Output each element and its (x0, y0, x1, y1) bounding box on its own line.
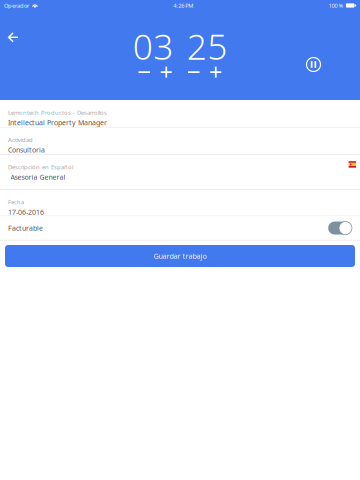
staticText: Fecha (8, 198, 24, 206)
staticText: 5 (207, 22, 227, 70)
button[interactable]: Increase minutes (205, 66, 227, 78)
button[interactable]: Descripción en Español (0, 155, 360, 189)
button[interactable]: Fecha (0, 190, 360, 216)
staticText: 17-06-2016 (8, 207, 44, 217)
staticText: 0 (133, 22, 153, 70)
staticText: 100 % (328, 2, 343, 9)
staticText: Consultoria (8, 145, 45, 154)
button[interactable]: Back (0, 31, 30, 48)
button[interactable]: Decrease minutes (183, 66, 205, 78)
button[interactable]: Guardar trabajo (5, 245, 355, 267)
staticText: 3 (153, 22, 173, 70)
staticText: Descripción en Español (8, 163, 73, 171)
button[interactable]: Decrease hours (133, 66, 155, 78)
staticText: 2 (187, 22, 207, 70)
button[interactable]: Lemontech Productos - Desarrollos (0, 100, 360, 127)
button[interactable]: Increase hours (155, 66, 177, 78)
staticText: Intellectual Property Manager (8, 118, 107, 127)
staticText: Actividad (8, 136, 33, 144)
button[interactable]: Pause timer (298, 49, 329, 80)
button[interactable]: Facturable (0, 216, 360, 240)
button[interactable]: Actividad (0, 128, 360, 154)
staticText: Asesoría General (10, 172, 65, 182)
staticText: Operador (4, 2, 29, 9)
staticText: Guardar trabajo (153, 251, 206, 261)
staticText: 4:26 PM (173, 2, 193, 9)
staticText: Lemontech Productos - Desarrollos (8, 108, 107, 116)
staticText: Facturable (8, 223, 43, 233)
